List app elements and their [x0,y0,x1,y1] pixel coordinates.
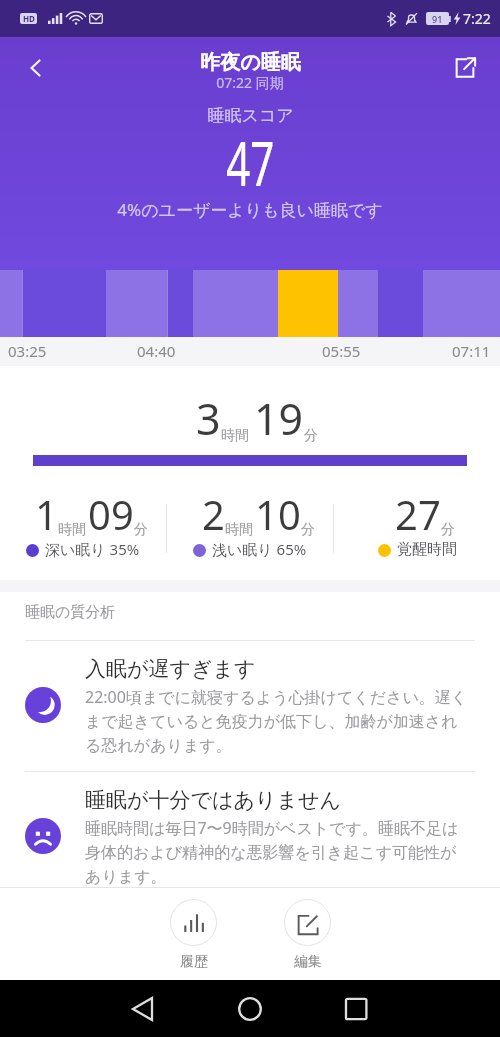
button[interactable]: Back [13,45,59,91]
staticText: 分 [441,522,455,538]
staticText: 7:22 [463,9,491,28]
staticText: 07:11 [452,341,491,361]
staticText: 04:40 [137,341,176,361]
staticText: 47 [226,136,275,199]
staticText: 19 [254,400,304,445]
staticText: 3 [196,400,221,445]
staticText: 分 [304,428,318,444]
staticText: 03:25 [8,341,47,361]
staticText: 05:55 [322,341,361,361]
staticText: 10 [255,497,301,539]
staticText: 1 [35,497,58,539]
staticText: 分 [134,522,148,538]
button[interactable]: 編集 [274,899,341,970]
staticText: 27 [395,497,441,539]
button[interactable]: 睡眠が十分ではありません [0,772,500,902]
staticText: 07:22 同期 [216,73,284,92]
staticText: 4%のユーザーよりも良い睡眠です [117,198,383,221]
staticText: 浅い眠り 65% [212,542,307,559]
staticText: 分 [301,522,315,538]
staticText: 時間 [221,428,249,444]
staticText: 2 [202,497,225,539]
staticText: 睡眠スコア [207,105,294,126]
button[interactable]: Share [442,45,488,91]
staticText: 22:00頃までに就寝するよう心掛けてください。遅くまで起きていると免疫力が低下… [85,684,468,757]
staticText: 時間 [58,522,86,538]
button[interactable]: 履歴 [160,899,227,970]
staticText: 入眠が遅すぎます [85,657,256,683]
staticText: 編集 [294,955,322,970]
staticText: 91 [432,13,443,25]
staticText: HD [23,13,35,24]
staticText: 睡眠が十分ではありません [85,788,341,814]
staticText: 睡眠時間は毎日7〜9時間がベストです。睡眠不足は身体的および精神的な悪影響を引き… [85,815,468,888]
staticText: 09 [88,497,134,539]
staticText: 履歴 [180,955,208,970]
staticText: 覚醒時間 [397,542,457,558]
button[interactable]: 入眠が遅すぎます [0,641,500,771]
staticText: 昨夜の睡眠 [200,50,301,75]
staticText: 深い眠り 35% [45,542,140,559]
staticText: 時間 [225,522,253,538]
staticText: 睡眠の質分析 [25,603,116,622]
